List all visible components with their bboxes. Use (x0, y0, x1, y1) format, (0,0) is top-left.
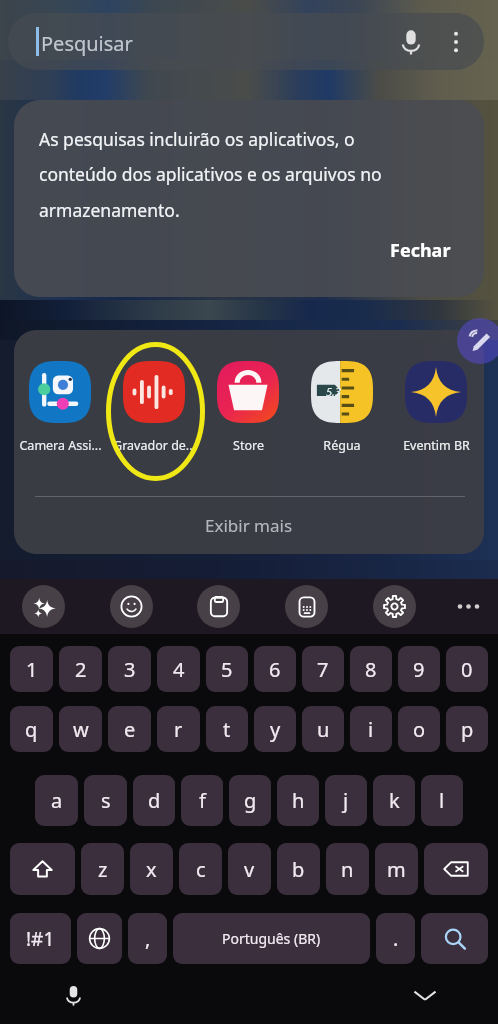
button[interactable]: 8 (350, 646, 392, 692)
button[interactable]: f (181, 775, 223, 826)
staticText: j (343, 787, 349, 814)
button[interactable]: 5 (206, 646, 248, 692)
button[interactable]: Magic (22, 585, 65, 628)
button[interactable]: 2 (59, 646, 102, 692)
button[interactable]: x (130, 843, 173, 895)
staticText: 4 (173, 656, 185, 683)
button[interactable]: w (59, 706, 102, 752)
staticText: l (439, 787, 445, 814)
button[interactable]: !#1 (10, 913, 71, 964)
staticText: c (196, 856, 206, 883)
staticText: 0 (461, 656, 473, 683)
staticText: e (124, 716, 136, 743)
button[interactable]: k (373, 775, 415, 826)
staticText: d (148, 787, 161, 814)
button[interactable]: d (133, 775, 175, 826)
button[interactable]: Emoji (110, 585, 153, 628)
staticText: w (73, 716, 89, 743)
staticText: i (368, 716, 374, 743)
button[interactable]: 1 (10, 646, 53, 692)
button[interactable]: Camera Assi... (14, 361, 107, 454)
button[interactable]: y (254, 706, 296, 752)
staticText: t (223, 716, 231, 743)
staticText: k (389, 787, 400, 814)
button[interactable]: Gravador de... (107, 361, 201, 454)
button[interactable]: t (206, 706, 248, 752)
button[interactable]: . (376, 913, 415, 964)
button[interactable]: 6 (254, 646, 296, 692)
button[interactable]: 3 (108, 646, 151, 692)
staticText: y (270, 716, 281, 743)
staticText: Português (BR) (222, 929, 321, 948)
button[interactable]: u (302, 706, 344, 752)
staticText: x (146, 856, 157, 883)
button[interactable]: m (375, 843, 418, 895)
button[interactable]: Backspace (424, 843, 488, 895)
staticText: 5.3 (326, 384, 341, 399)
button[interactable]: 5.3 (295, 361, 389, 454)
button[interactable]: Eventim BR (389, 361, 483, 454)
staticText: g (244, 787, 257, 814)
button[interactable]: Search (421, 913, 488, 964)
button[interactable]: More (447, 585, 490, 628)
button[interactable]: b (277, 843, 320, 895)
button[interactable]: Pesquisar (8, 13, 484, 70)
button[interactable]: e (108, 706, 151, 752)
button[interactable]: More options (443, 29, 469, 55)
button[interactable]: Store (201, 361, 295, 454)
button[interactable]: o (398, 706, 440, 752)
button[interactable]: 9 (398, 646, 440, 692)
button[interactable]: Number pad (285, 585, 328, 628)
button[interactable]: Fechar (382, 230, 459, 271)
staticText: u (317, 716, 330, 743)
button[interactable]: v (228, 843, 271, 895)
staticText: Camera Assi... (19, 437, 102, 454)
button[interactable]: r (157, 706, 200, 752)
staticText: o (413, 716, 426, 743)
staticText: Exibir mais (205, 514, 293, 537)
button[interactable]: 7 (302, 646, 344, 692)
button[interactable]: 0 (446, 646, 488, 692)
staticText: Store (233, 437, 264, 454)
button[interactable]: s (84, 775, 127, 826)
staticText: Pesquisar (41, 30, 133, 57)
staticText: 2 (75, 656, 87, 683)
staticText: z (98, 856, 108, 883)
button[interactable]: Voice input (56, 978, 90, 1012)
button[interactable]: p (446, 706, 488, 752)
button[interactable]: , (128, 913, 167, 964)
staticText: Régua (323, 437, 361, 454)
staticText: 7 (317, 656, 329, 683)
button[interactable]: Settings (373, 585, 416, 628)
button[interactable]: Hide keyboard (408, 978, 442, 1012)
button[interactable]: c (179, 843, 222, 895)
button[interactable]: n (326, 843, 369, 895)
staticText: 5 (221, 656, 233, 683)
button[interactable]: Clipboard (197, 585, 240, 628)
button[interactable]: z (81, 843, 124, 895)
button[interactable]: g (229, 775, 271, 826)
button[interactable]: Shift (10, 843, 75, 895)
button[interactable]: Exibir mais (14, 497, 484, 554)
button[interactable]: j (325, 775, 367, 826)
staticText: q (25, 716, 38, 743)
button[interactable]: a (35, 775, 78, 826)
staticText: As pesquisas incluirão os aplicativos, o… (39, 127, 407, 222)
staticText: Gravador de... (113, 437, 196, 454)
staticText: Eventim BR (403, 437, 470, 454)
button[interactable]: S Pen (457, 318, 498, 364)
staticText: r (174, 716, 183, 743)
button[interactable]: 4 (157, 646, 200, 692)
button[interactable]: Português (BR) (173, 913, 370, 964)
staticText: 8 (365, 656, 377, 683)
staticText: !#1 (26, 926, 55, 952)
staticText: , (145, 925, 151, 952)
button[interactable]: q (10, 706, 53, 752)
button[interactable]: h (277, 775, 319, 826)
button[interactable]: Voice search (397, 28, 424, 55)
staticText: n (341, 856, 354, 883)
button[interactable]: Language (77, 913, 122, 964)
button[interactable]: l (421, 775, 463, 826)
staticText: 3 (124, 656, 136, 683)
button[interactable]: i (350, 706, 392, 752)
